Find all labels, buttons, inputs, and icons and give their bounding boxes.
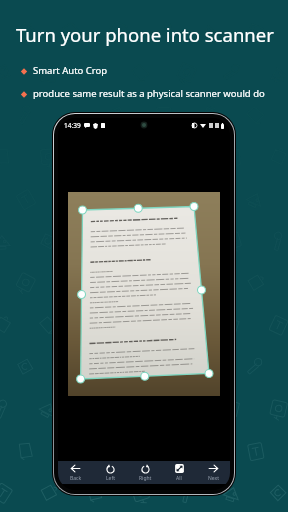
staticText: 14:39 bbox=[64, 121, 81, 130]
staticText: produce same result as a physical scanne… bbox=[33, 87, 265, 100]
staticText: Right bbox=[139, 475, 152, 482]
button[interactable]: Next bbox=[196, 461, 230, 484]
button[interactable]: Left bbox=[93, 461, 128, 484]
button[interactable]: Back bbox=[58, 461, 93, 484]
button[interactable]: All bbox=[162, 461, 196, 484]
staticText: Smart Auto Crop bbox=[33, 64, 108, 77]
button[interactable]: Right bbox=[128, 461, 162, 484]
staticText: Next bbox=[208, 475, 219, 482]
staticText: Left bbox=[106, 475, 115, 482]
staticText: Turn your phone into scanner bbox=[16, 22, 274, 47]
staticText: Back bbox=[70, 475, 82, 482]
staticText: All bbox=[176, 475, 182, 482]
